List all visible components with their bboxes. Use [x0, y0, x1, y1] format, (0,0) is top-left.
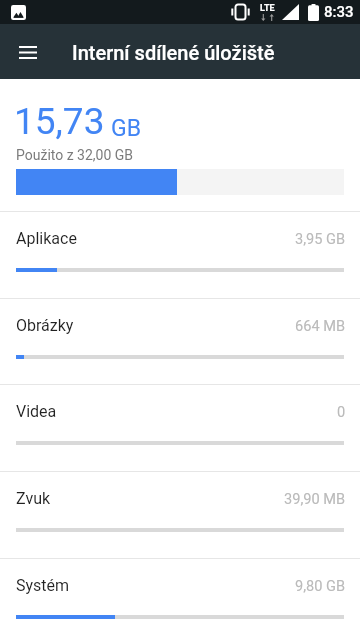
- staticText: Obrázky: [16, 316, 74, 335]
- staticText: LTE: [260, 3, 275, 14]
- button[interactable]: Systém: [0, 558, 360, 640]
- staticText: 0: [337, 403, 346, 420]
- button[interactable]: Videa: [0, 384, 360, 471]
- button[interactable]: Obrázky: [0, 298, 360, 384]
- staticText: 3,95 GB: [295, 230, 346, 247]
- staticText: Interní sdílené úložiště: [72, 41, 275, 64]
- staticText: Aplikace: [16, 229, 77, 248]
- staticText: Zvuk: [16, 489, 51, 508]
- button[interactable]: Open navigation menu: [4, 28, 52, 76]
- staticText: 39,90 MB: [284, 490, 346, 507]
- button[interactable]: Zvuk: [0, 471, 360, 558]
- staticText: 15,73: [14, 100, 105, 143]
- button[interactable]: Aplikace: [0, 211, 360, 298]
- staticText: Videa: [16, 402, 57, 421]
- staticText: Systém: [16, 576, 70, 595]
- staticText: 664 MB: [295, 317, 346, 334]
- staticText: GB: [111, 115, 141, 142]
- staticText: Použito z 32,00 GB: [16, 147, 134, 163]
- staticText: 8:33: [324, 3, 354, 21]
- staticText: 9,80 GB: [295, 577, 346, 594]
